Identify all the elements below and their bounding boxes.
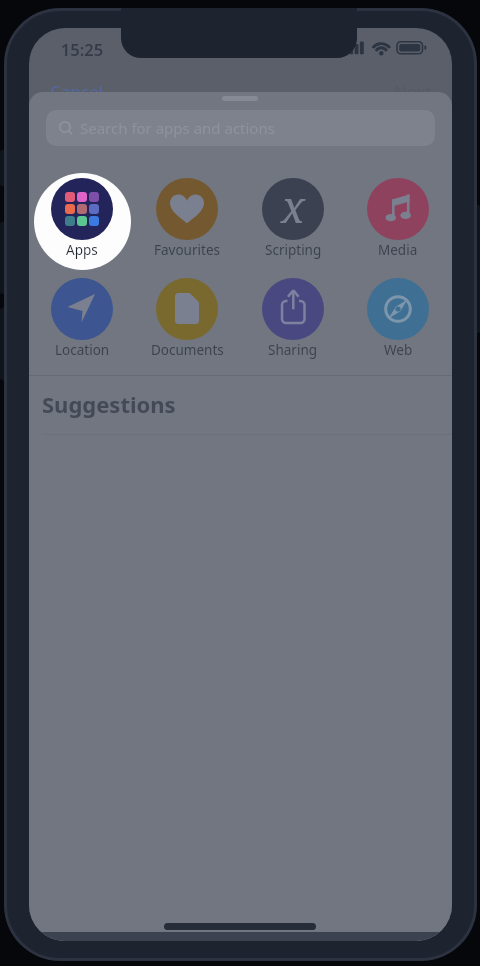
button[interactable]: [51, 178, 113, 240]
staticText: Sharing: [268, 341, 318, 359]
button[interactable]: [51, 278, 113, 340]
staticText: Suggestions: [42, 389, 176, 419]
button[interactable]: x: [262, 178, 324, 240]
staticText: Location: [55, 341, 110, 359]
staticText: Apps: [66, 241, 98, 259]
button[interactable]: [262, 278, 324, 340]
staticText: Favourites: [154, 241, 220, 259]
staticText: Scripting: [265, 241, 322, 259]
staticText: x: [281, 178, 306, 236]
button[interactable]: Cancel: [50, 80, 103, 103]
button[interactable]: [156, 278, 218, 340]
staticText: Web: [384, 341, 413, 359]
staticText: Search for apps and actions: [80, 118, 275, 138]
button[interactable]: [367, 278, 429, 340]
button[interactable]: [156, 178, 218, 240]
staticText: Documents: [151, 341, 224, 359]
button[interactable]: Search for apps and actions: [46, 110, 435, 146]
staticText: Media: [378, 241, 418, 259]
button[interactable]: Next: [394, 80, 432, 103]
button[interactable]: [367, 178, 429, 240]
staticText: 15:25: [37, 38, 127, 60]
